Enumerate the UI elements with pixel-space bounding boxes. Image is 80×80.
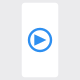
button[interactable]: Play video <box>22 3 58 77</box>
